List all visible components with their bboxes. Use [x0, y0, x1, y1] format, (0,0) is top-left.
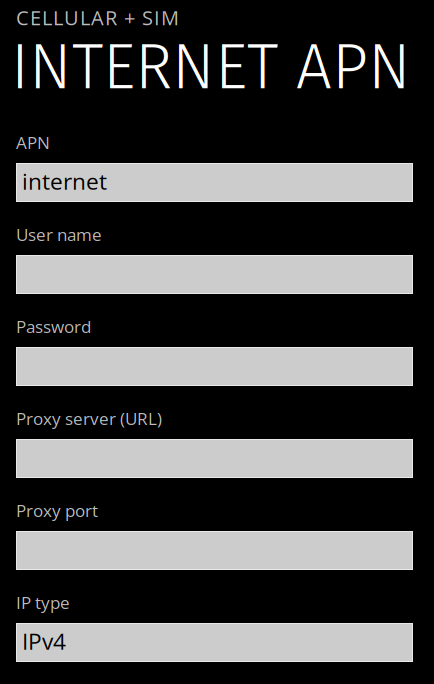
staticText: IP type — [16, 591, 70, 614]
staticText: INTERNET APN — [11, 29, 411, 105]
button[interactable]: Proxy server (URL) — [16, 439, 413, 478]
staticText: Password — [16, 315, 91, 338]
button[interactable]: APN — [16, 163, 413, 202]
staticText: internet — [22, 166, 107, 196]
button[interactable]: Password — [16, 347, 413, 386]
staticText: Proxy server (URL) — [16, 407, 162, 430]
staticText: Proxy port — [16, 499, 98, 522]
button[interactable]: User name — [16, 255, 413, 294]
button[interactable]: Proxy port — [16, 531, 413, 570]
staticText: APN — [16, 131, 50, 154]
staticText: User name — [16, 223, 102, 246]
button[interactable]: IP type — [16, 623, 413, 662]
staticText: IPv4 — [22, 626, 66, 656]
staticText: CELLULAR + SIM — [16, 4, 179, 31]
